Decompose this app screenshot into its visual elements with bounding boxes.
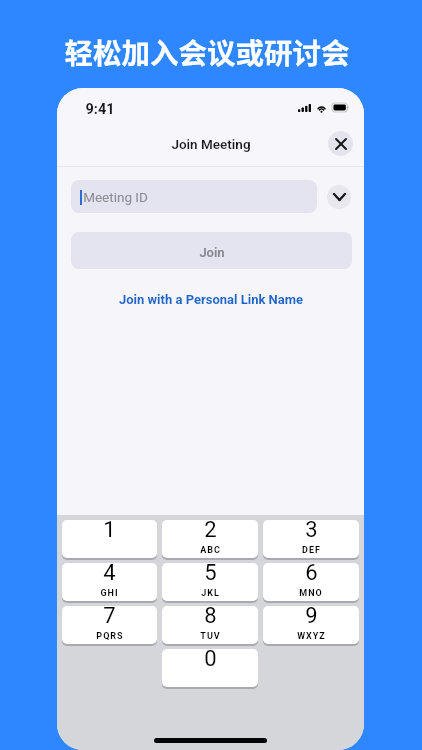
staticText: Join with a Personal Link Name: [119, 292, 303, 307]
staticText: Join Meeting: [171, 136, 251, 152]
staticText: 轻松加入会议或研讨会: [64, 31, 350, 72]
button[interactable]: 0: [162, 649, 258, 687]
staticText: Join: [199, 245, 225, 260]
staticText: 8: [204, 606, 217, 629]
staticText: 9: [305, 606, 318, 629]
button[interactable]: 3: [263, 520, 359, 558]
staticText: 0: [204, 649, 217, 672]
staticText: DEF: [302, 545, 321, 556]
staticText: 2: [204, 520, 217, 543]
button[interactable]: 1: [62, 520, 157, 558]
staticText: ABC: [200, 545, 221, 556]
staticText: WXYZ: [297, 631, 326, 642]
staticText: 6: [305, 563, 318, 586]
staticText: MNO: [299, 588, 323, 599]
button[interactable]: 2: [162, 520, 258, 558]
staticText: PQRS: [96, 631, 124, 642]
staticText: 5: [204, 563, 217, 586]
button[interactable]: Join: [71, 232, 352, 269]
button[interactable]: 5: [162, 563, 258, 601]
staticText: 3: [305, 520, 318, 543]
staticText: TUV: [200, 631, 221, 642]
staticText: 7: [103, 606, 116, 629]
button[interactable]: 8: [162, 606, 258, 644]
button[interactable]: 7: [62, 606, 157, 644]
staticText: JKL: [201, 588, 220, 599]
staticText: 1: [103, 520, 116, 543]
button[interactable]: Close: [328, 131, 353, 156]
staticText: GHI: [100, 588, 119, 599]
button[interactable]: 4: [62, 563, 157, 601]
staticText: 9:41: [85, 101, 115, 118]
button[interactable]: 9: [263, 606, 359, 644]
button[interactable]: Meeting ID: [71, 180, 317, 213]
button[interactable]: Join with a Personal Link Name: [109, 288, 313, 311]
staticText: Meeting ID: [83, 189, 148, 205]
button[interactable]: 6: [263, 563, 359, 601]
staticText: 4: [103, 563, 116, 586]
button[interactable]: Show recent meeting IDs: [327, 185, 351, 209]
